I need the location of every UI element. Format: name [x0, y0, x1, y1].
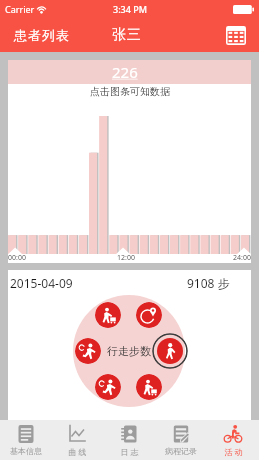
staticText: 226 [112, 62, 138, 82]
button[interactable]: 基本信息 [0, 420, 51, 460]
button[interactable]: Shopping cart [95, 302, 121, 328]
staticText: 3:34 PM [113, 3, 147, 15]
button[interactable]: 病程记录 [155, 420, 207, 460]
button[interactable]: 活 动 [207, 420, 259, 460]
staticText: 点击图条可知数据 [90, 85, 170, 98]
button[interactable]: Shopping [136, 374, 162, 400]
staticText: 日 志 [120, 446, 139, 457]
staticText: 2015-04-09 [10, 275, 73, 291]
staticText: 患者列表 [14, 27, 70, 43]
staticText: 基本信息 [10, 446, 42, 456]
button[interactable]: Running time [95, 374, 121, 400]
staticText: 12:00 [117, 253, 135, 262]
staticText: 病程记录 [165, 446, 197, 456]
button[interactable]: 日 志 [103, 420, 155, 460]
button[interactable]: Running [75, 338, 101, 364]
staticText: 24:00 [233, 253, 251, 262]
staticText: 曲 线 [68, 446, 87, 457]
button[interactable]: Map location [136, 302, 162, 328]
button[interactable]: Calendar [216, 20, 259, 51]
staticText: 行走步数 [107, 344, 151, 358]
button[interactable]: 曲 线 [51, 420, 103, 460]
button[interactable]: Walking [152, 333, 188, 369]
staticText: 张三 [112, 26, 142, 44]
staticText: 00:00 [8, 253, 26, 262]
staticText: 9108 步 [187, 275, 230, 291]
button[interactable]: 患者列表 [0, 21, 80, 49]
staticText: 活 动 [224, 446, 243, 457]
staticText: Carrier [5, 3, 35, 15]
